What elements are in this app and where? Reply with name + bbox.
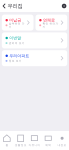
staticText: 미납금: [9, 18, 21, 23]
staticText: 확인 하러가기: [42, 22, 58, 29]
button[interactable]: 연체료: [35, 15, 67, 31]
staticText: 내정보: [58, 143, 67, 147]
staticText: 관리비 보기: [9, 41, 25, 45]
staticText: 정보 보기: [9, 59, 22, 63]
staticText: 생활정보: [15, 143, 27, 147]
staticText: 혜택: [45, 143, 51, 147]
staticText: 우리아파트: [9, 53, 29, 58]
button[interactable]: 생활정보: [14, 131, 28, 150]
button[interactable]: 이번달: [2, 32, 67, 48]
button[interactable]: 커뮤니티: [28, 131, 41, 150]
button[interactable]: 우리집: [0, 0, 24, 12]
button[interactable]: 미납금: [2, 15, 33, 31]
staticText: 커뮤니티: [28, 143, 40, 147]
staticText: 납부하러 가기: [9, 22, 25, 29]
button[interactable]: 우리아파트: [2, 50, 67, 66]
staticText: 연체료: [43, 18, 55, 23]
staticText: 우리집: [7, 3, 22, 9]
staticText: 이번달: [9, 35, 21, 40]
button[interactable]: 혜택: [41, 131, 55, 150]
button[interactable]: 내정보: [55, 131, 69, 150]
button[interactable]: Notifications: [59, 0, 69, 12]
button[interactable]: 홈: [0, 131, 14, 150]
staticText: 홈: [5, 143, 8, 147]
